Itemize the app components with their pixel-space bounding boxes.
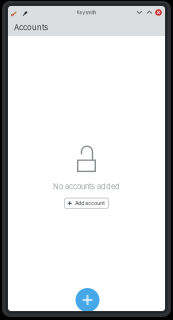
- button[interactable]: Maximize: [143, 6, 155, 19]
- button[interactable]: Keep above others: [19, 7, 30, 20]
- staticText: Accounts: [14, 23, 48, 32]
- staticText: Add account: [75, 200, 105, 206]
- button[interactable]: Add account: [64, 198, 108, 208]
- button[interactable]: Close: [152, 6, 164, 19]
- button[interactable]: Minimize: [133, 6, 145, 19]
- staticText: Keysmith: [76, 10, 96, 15]
- staticText: No accounts added: [53, 182, 120, 191]
- button[interactable]: Application menu: [8, 7, 19, 20]
- button[interactable]: Add account: [75, 288, 99, 312]
